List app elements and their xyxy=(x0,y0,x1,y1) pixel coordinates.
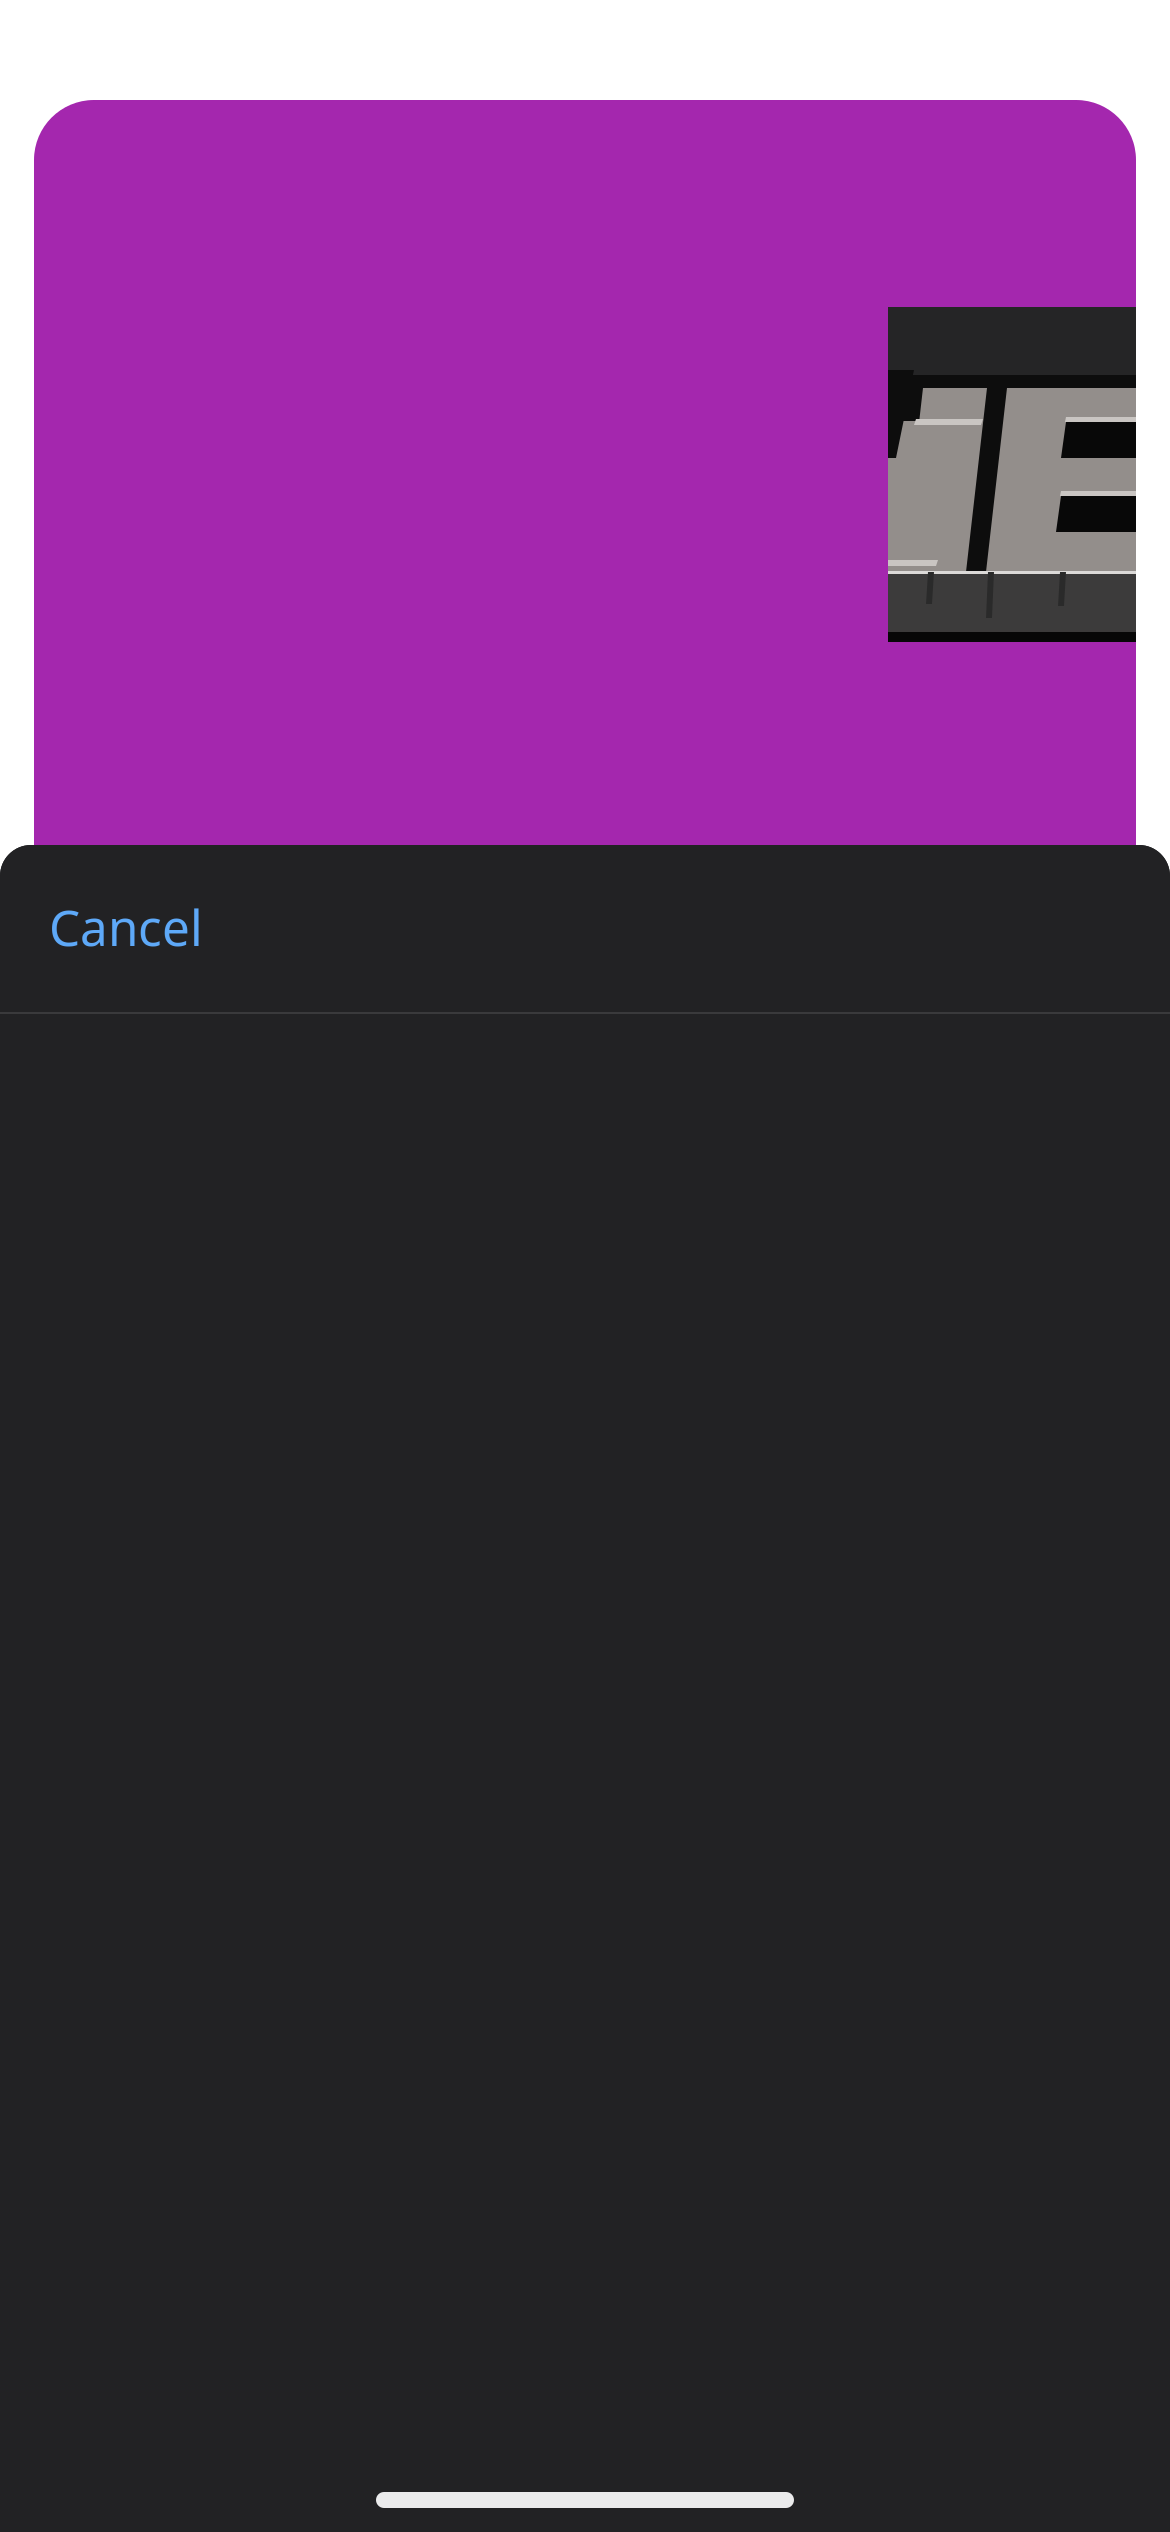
staticText: Cancel xyxy=(49,894,203,959)
button[interactable]: Cancel xyxy=(0,845,1170,1012)
